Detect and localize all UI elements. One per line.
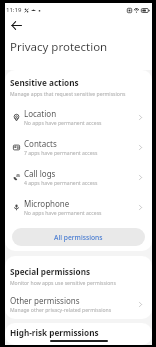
button[interactable]: Call logs (5, 162, 152, 192)
staticText: 4 apps have permanent access (24, 180, 98, 187)
staticText: 7 apps have permanent access (24, 150, 98, 157)
staticText: High-risk permissions (10, 327, 99, 338)
staticText: Location (24, 108, 57, 119)
staticText: All permissions (54, 233, 103, 242)
staticText: Manage apps that request sensitive permi… (10, 91, 126, 98)
staticText: Special permissions (10, 266, 91, 277)
button[interactable]: All permissions (12, 228, 145, 246)
staticText: Manage other privacy-related permissions (10, 307, 112, 314)
staticText: Call logs (24, 168, 56, 179)
button[interactable]: Location (5, 102, 152, 132)
staticText: Privacy protection (10, 39, 108, 55)
staticText: 11:19 (6, 6, 22, 14)
staticText: Other permissions (10, 295, 80, 306)
button[interactable]: Back (8, 17, 24, 33)
button[interactable]: Other permissions (5, 289, 152, 319)
staticText: Contacts (24, 138, 57, 149)
staticText: Sensitive actions (10, 77, 79, 88)
staticText: Microphone (24, 198, 70, 209)
button[interactable]: Microphone (5, 192, 152, 222)
staticText: Monitor how apps use sensitive permissio… (10, 280, 116, 287)
staticText: No apps have permanent access (24, 210, 102, 217)
staticText: No apps have permanent access (24, 120, 102, 127)
button[interactable]: Contacts (5, 132, 152, 162)
